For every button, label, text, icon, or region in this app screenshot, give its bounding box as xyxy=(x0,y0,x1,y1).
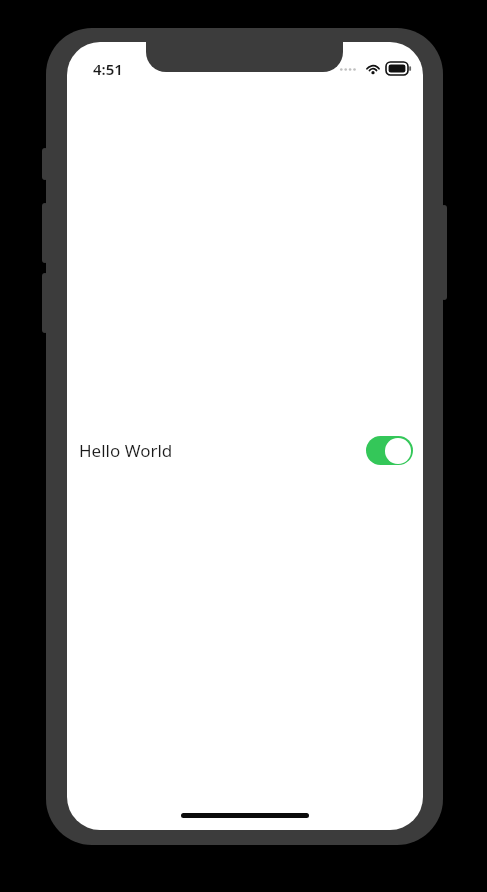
button[interactable]: Hello World xyxy=(79,427,413,473)
staticText: 4:51 xyxy=(93,59,123,79)
button[interactable]: Hello World toggle xyxy=(366,436,413,465)
staticText: Hello World xyxy=(79,439,173,462)
